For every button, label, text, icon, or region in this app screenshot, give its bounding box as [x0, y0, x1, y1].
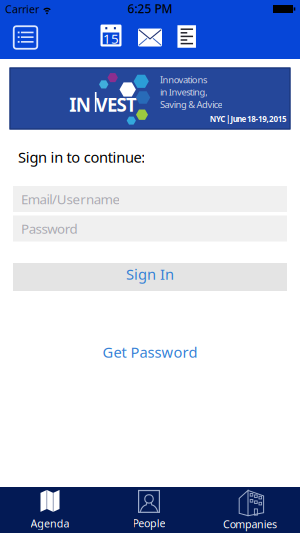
- button[interactable]: Get Password: [102, 342, 197, 362]
- staticText: People: [132, 516, 165, 530]
- staticText: Password: [21, 220, 78, 237]
- button[interactable]: [177, 25, 196, 48]
- staticText: in Investing,: [160, 86, 208, 98]
- staticText: Sign In: [126, 264, 174, 284]
- staticText: Agenda: [30, 516, 69, 530]
- staticText: Innovations: [160, 73, 207, 86]
- staticText: 6:25 PM: [127, 0, 172, 16]
- staticText: Carrier: [5, 2, 39, 16]
- staticText: Get Password: [102, 342, 197, 362]
- button[interactable]: Password: [13, 215, 287, 241]
- button[interactable]: 15: [100, 24, 121, 46]
- button[interactable]: [138, 28, 162, 46]
- staticText: IN: [69, 92, 91, 117]
- staticText: 15: [103, 30, 119, 47]
- staticText: NYC | June 18-19, 2015: [210, 114, 287, 124]
- staticText: VEST: [95, 92, 137, 117]
- button[interactable]: Companies: [200, 487, 300, 533]
- button[interactable]: [14, 26, 37, 49]
- staticText: Saving & Advice: [160, 98, 222, 111]
- button[interactable]: Agenda: [0, 487, 100, 533]
- staticText: Email/Username: [21, 190, 120, 208]
- staticText: Companies: [223, 517, 277, 531]
- button[interactable]: Sign In: [13, 263, 287, 291]
- staticText: Sign in to continue:: [18, 147, 145, 167]
- button[interactable]: Email/Username: [13, 186, 287, 212]
- button[interactable]: People: [99, 487, 199, 533]
